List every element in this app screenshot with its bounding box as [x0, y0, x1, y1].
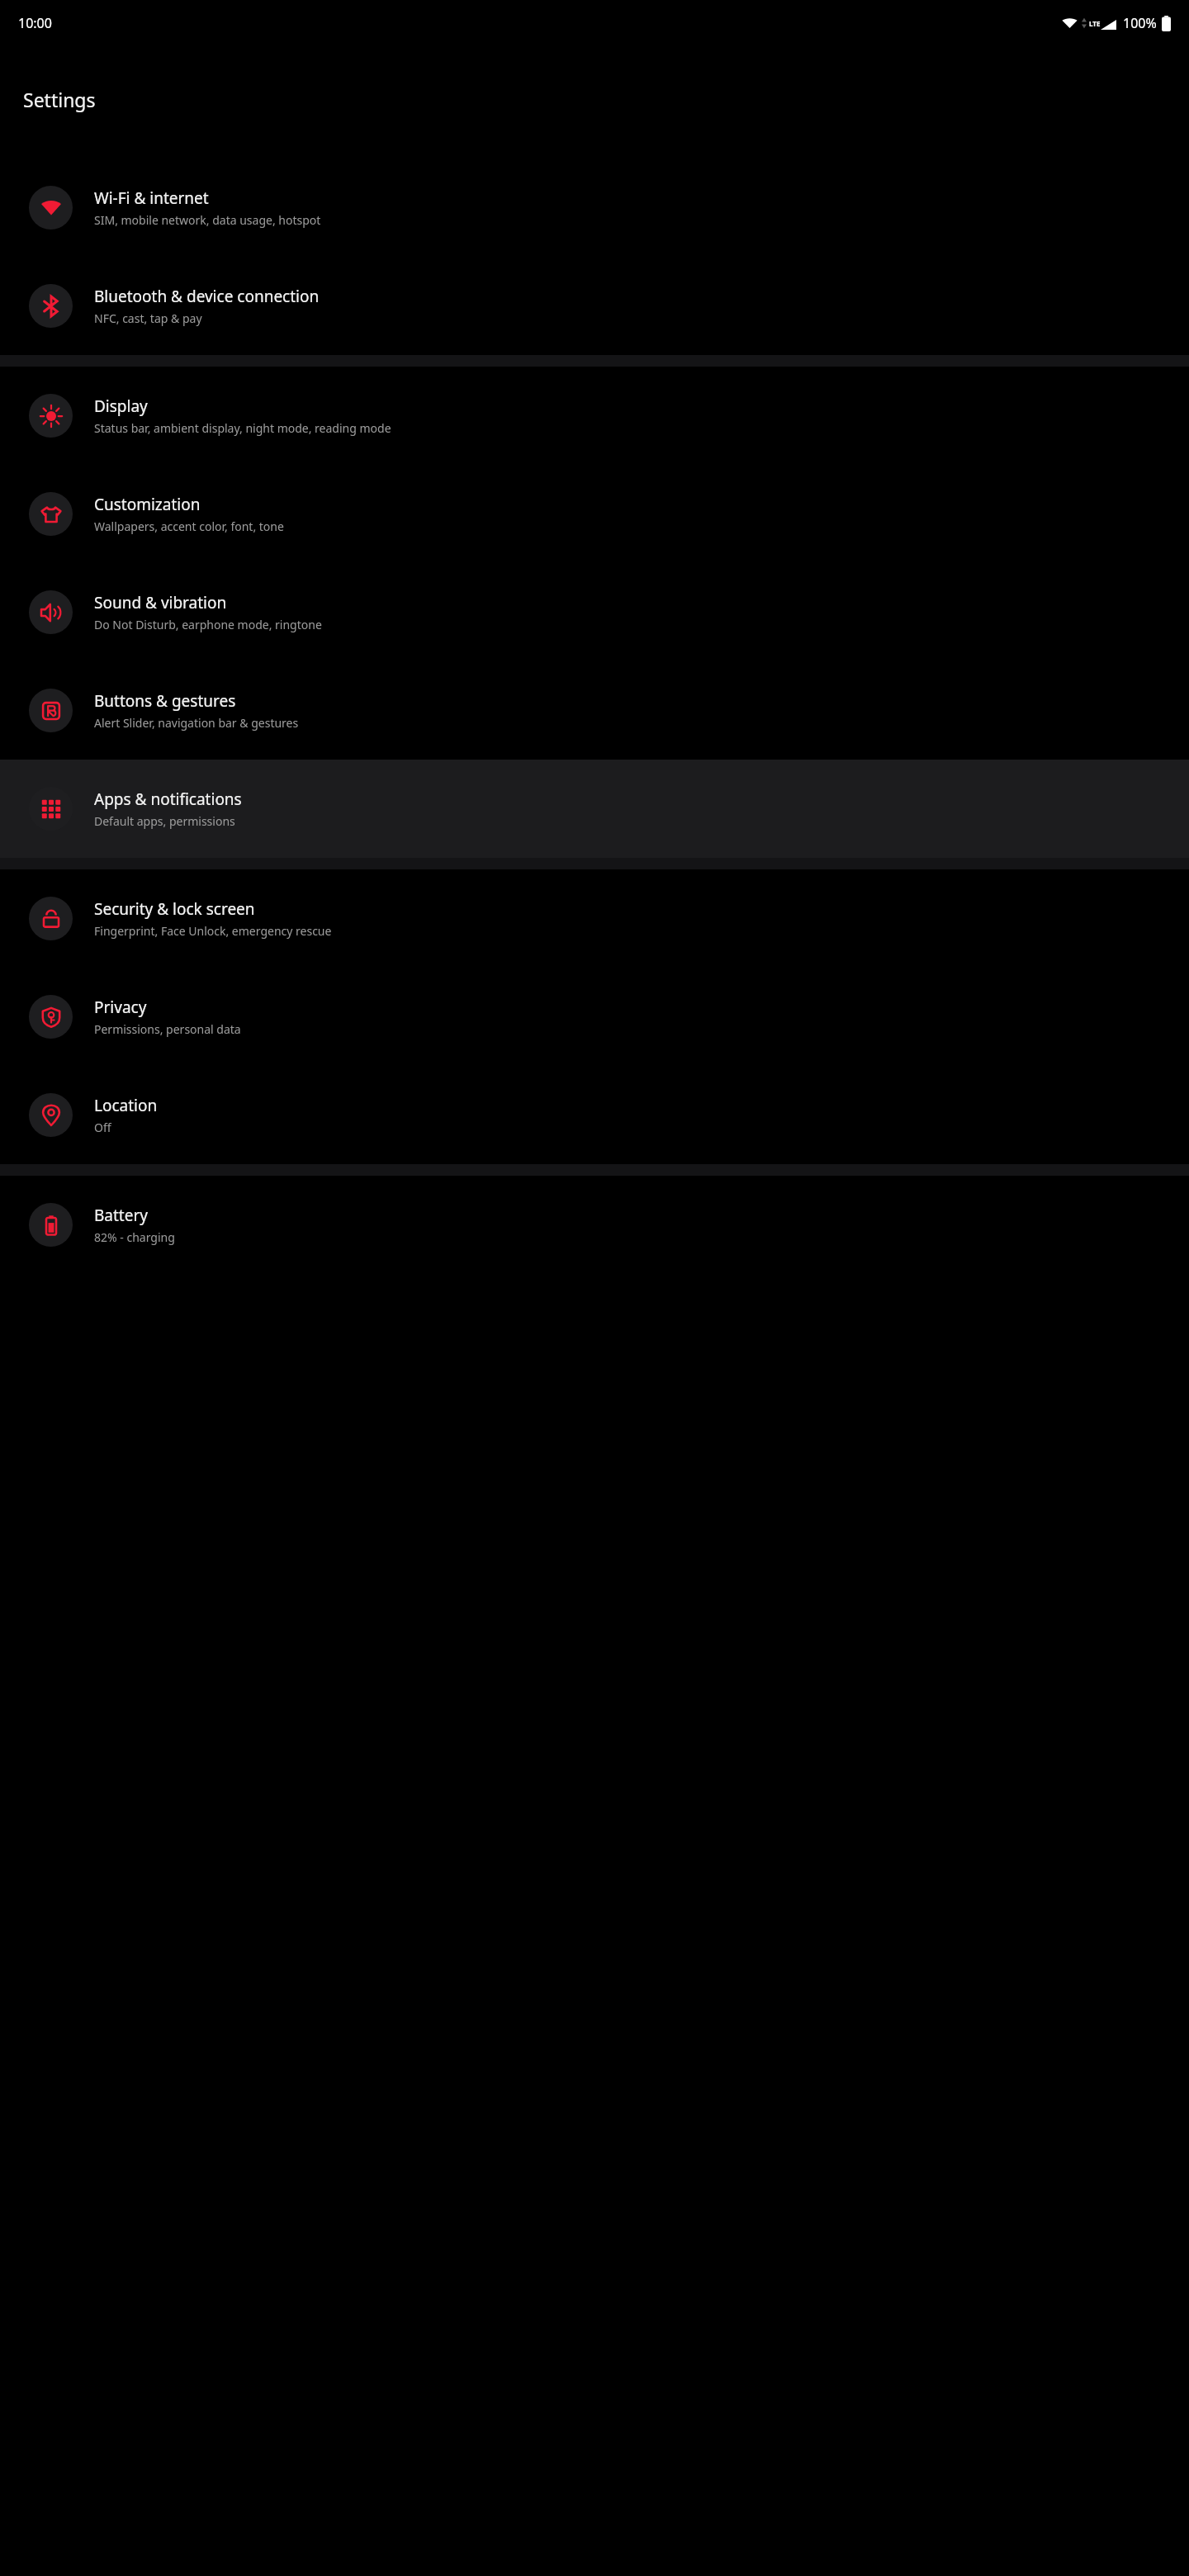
button[interactable]: Bluetooth & device connection [0, 257, 1189, 355]
staticText: Do Not Disturb, earphone mode, ringtone [94, 617, 322, 632]
staticText: 82% - charging [94, 1229, 175, 1245]
staticText: Alert Slider, navigation bar & gestures [94, 715, 299, 731]
staticText: Off [94, 1120, 111, 1135]
button[interactable]: Customization [0, 465, 1189, 563]
staticText: Bluetooth & device connection [94, 286, 320, 307]
staticText: Customization [94, 494, 201, 515]
staticText: Security & lock screen [94, 898, 255, 920]
staticText: Status bar, ambient display, night mode,… [94, 420, 391, 436]
button[interactable]: Wi-Fi & internet [0, 159, 1189, 257]
staticText: SIM, mobile network, data usage, hotspot [94, 212, 321, 228]
button[interactable]: Sound & vibration [0, 563, 1189, 661]
staticText: Display [94, 395, 148, 417]
button[interactable]: Security & lock screen [0, 869, 1189, 968]
staticText: 100% [1123, 14, 1157, 32]
button[interactable]: Battery [0, 1176, 1189, 1274]
button[interactable]: Privacy [0, 968, 1189, 1066]
staticText: Location [94, 1095, 158, 1116]
staticText: NFC, cast, tap & pay [94, 310, 202, 326]
staticText: Apps & notifications [94, 788, 242, 810]
staticText: Battery [94, 1205, 148, 1226]
staticText: Wallpapers, accent color, font, tone [94, 519, 284, 534]
staticText: Permissions, personal data [94, 1021, 241, 1037]
staticText: Buttons & gestures [94, 690, 236, 712]
staticText: Privacy [94, 997, 147, 1018]
staticText: Settings [23, 87, 96, 112]
staticText: Sound & vibration [94, 592, 227, 613]
staticText: Default apps, permissions [94, 813, 235, 829]
button[interactable]: Buttons & gestures [0, 661, 1189, 760]
staticText: LTE [1089, 19, 1101, 28]
staticText: Wi-Fi & internet [94, 187, 209, 209]
staticText: 10:00 [18, 14, 52, 32]
button[interactable]: Display [0, 367, 1189, 465]
button[interactable]: Apps & notifications [0, 760, 1189, 858]
button[interactable]: Location [0, 1066, 1189, 1164]
staticText: Fingerprint, Face Unlock, emergency resc… [94, 923, 332, 939]
